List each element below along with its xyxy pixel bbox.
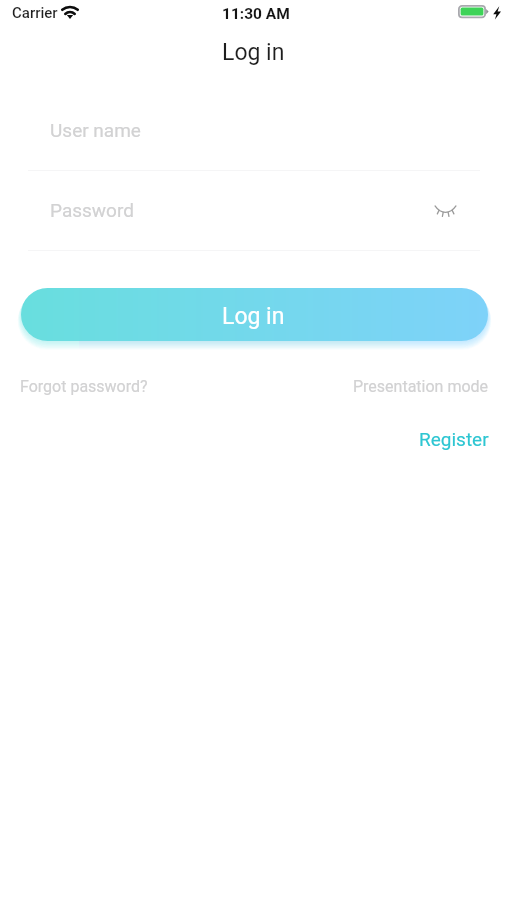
button[interactable]: Password [0, 177, 507, 251]
staticText: 11:30 AM [222, 5, 290, 23]
button[interactable]: Presentation mode [353, 377, 489, 396]
button[interactable]: Register [419, 428, 489, 450]
staticText: Carrier [12, 4, 58, 22]
button[interactable]: Forgot password? [20, 377, 148, 396]
button[interactable]: Show password [424, 193, 466, 229]
button[interactable]: Log in [21, 288, 488, 341]
staticText: Log in [222, 39, 285, 66]
staticText: Register [419, 428, 489, 450]
staticText: Password [50, 199, 134, 221]
staticText: User name [50, 119, 141, 141]
staticText: Log in [222, 303, 285, 330]
staticText: Forgot password? [20, 377, 148, 396]
button[interactable]: User name [0, 97, 507, 171]
staticText: Presentation mode [353, 377, 489, 396]
